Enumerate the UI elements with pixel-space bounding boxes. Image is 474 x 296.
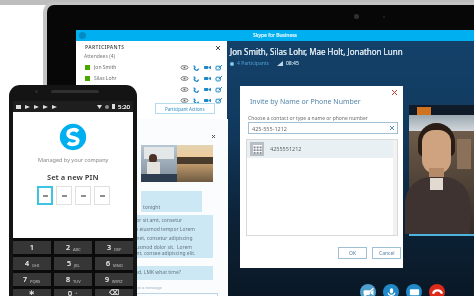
button[interactable]: Present [406, 284, 422, 296]
button[interactable]: 9 [95, 273, 133, 286]
staticText: Skype for Business [253, 32, 297, 39]
staticText: Participant Actions [165, 106, 205, 112]
button[interactable]: Close [214, 44, 221, 51]
button[interactable] [130, 293, 218, 296]
staticText: MNO [113, 263, 123, 268]
staticText: 2 [66, 243, 71, 253]
staticText: Set a new PIN [47, 172, 99, 182]
button[interactable]: Jonathon Lunn [85, 95, 222, 106]
staticText: 4 Participants [237, 60, 270, 67]
button[interactable]: Hang up [429, 284, 445, 296]
button[interactable]: Camera [360, 284, 376, 296]
staticText: Choose a contact or type a name or phone… [248, 115, 368, 122]
staticText: TUV [73, 279, 81, 284]
staticText: Jon Smith, Silas Lohr, Mae Holt, Jonatho… [230, 46, 403, 57]
button[interactable]: Participant Actions [155, 103, 215, 114]
button[interactable]: ∗ [13, 289, 51, 296]
button[interactable]: Cancel [372, 247, 401, 259]
staticText: GHI [32, 263, 40, 268]
staticText: ood, LMK what time? [132, 269, 182, 276]
staticText: Jon Smith [94, 64, 117, 71]
button[interactable]: Close dialog [392, 90, 397, 95]
staticText: PARTICIPANTS [85, 44, 125, 51]
button[interactable]: Silas Lohr [85, 73, 222, 84]
staticText: Invite by Name or Phone Number [250, 97, 361, 107]
staticText: 0 [68, 289, 73, 296]
staticText: 4 [25, 259, 30, 269]
staticText: amet, consetur adipiscing [132, 235, 193, 242]
button[interactable]: 1 [13, 241, 51, 254]
staticText: tonight [143, 204, 161, 211]
staticText: Type a message [132, 285, 163, 290]
button[interactable]: 425-555-1212 [248, 122, 398, 134]
staticText: ABC [73, 247, 81, 252]
staticText: Silas Lohr [94, 75, 117, 82]
button[interactable]: 6 [95, 257, 133, 270]
staticText: 1 [30, 243, 35, 253]
staticText: 9 [105, 275, 110, 285]
staticText: 8 [66, 275, 71, 285]
button[interactable]: 7 [13, 273, 51, 286]
button[interactable] [80, 103, 104, 114]
staticText: Mae Holt [94, 86, 116, 93]
button[interactable]: Mae Holt [85, 84, 222, 95]
button[interactable]: Close chat [210, 133, 216, 139]
staticText: Cancel [379, 250, 395, 257]
staticText: Attendees (4) [84, 53, 115, 60]
staticText: Managed by your company [38, 156, 109, 163]
button[interactable]: Microphone [383, 284, 399, 296]
staticText: OK [349, 250, 357, 257]
button[interactable]: Skype for Business [76, 30, 474, 41]
button[interactable] [75, 186, 91, 205]
button[interactable]: 3 [95, 241, 133, 254]
staticText: 5:20 [118, 103, 130, 111]
button[interactable]: 5 [54, 257, 92, 270]
staticText: ∗ [29, 289, 35, 296]
button[interactable]: 4 [13, 257, 51, 270]
staticText: 5 [67, 259, 72, 269]
staticText: DEF [114, 247, 122, 252]
button[interactable]: ⌫ [95, 289, 133, 296]
button[interactable] [37, 186, 53, 205]
staticText: 3 [107, 243, 112, 253]
button[interactable] [94, 186, 110, 205]
staticText: amt, consee adipiscing elit. [132, 250, 196, 257]
staticText: eiusmod dolor sit. Lorem [132, 244, 192, 250]
button[interactable]: 0 [54, 289, 92, 296]
staticText: ⌫ [109, 289, 119, 296]
staticText: 425-555-1212 [252, 125, 288, 132]
button[interactable]: OK [338, 247, 367, 259]
button[interactable]: Jon Smith [85, 62, 222, 73]
staticText: Jonathon Lunn [94, 97, 129, 104]
button[interactable]: 2 [54, 241, 92, 254]
button[interactable]: 8 [54, 273, 92, 286]
button[interactable] [56, 186, 72, 205]
staticText: 6 [106, 259, 111, 269]
staticText: olor sit amt, consetur [132, 217, 183, 224]
staticText: + [75, 290, 78, 295]
staticText: 7 [23, 275, 28, 285]
staticText: 4255551212 [270, 145, 302, 152]
staticText: 08:45 [286, 60, 299, 67]
staticText: JKL [74, 263, 80, 268]
staticText: PQRS [30, 279, 41, 284]
staticText: do eiusmod tempor Lorem [132, 226, 195, 233]
button[interactable]: 4255551212 [246, 139, 398, 158]
staticText: WXYZ [112, 279, 123, 284]
